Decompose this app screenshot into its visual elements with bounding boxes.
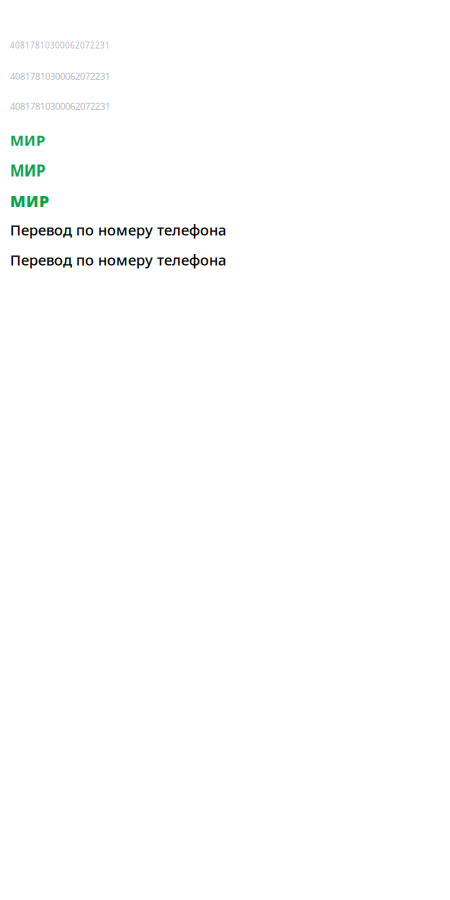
staticText: 40817810300062072231 [10,100,110,112]
staticText: МИР [10,190,49,212]
staticText: Перевод по номеру телефона [10,250,226,269]
staticText: 40817810300062072231 [10,40,110,51]
staticText: МИР [10,160,46,181]
staticText: 40817810300062072231 [10,70,110,82]
staticText: МИР [10,130,45,150]
staticText: Перевод по номеру телефона [10,220,226,239]
